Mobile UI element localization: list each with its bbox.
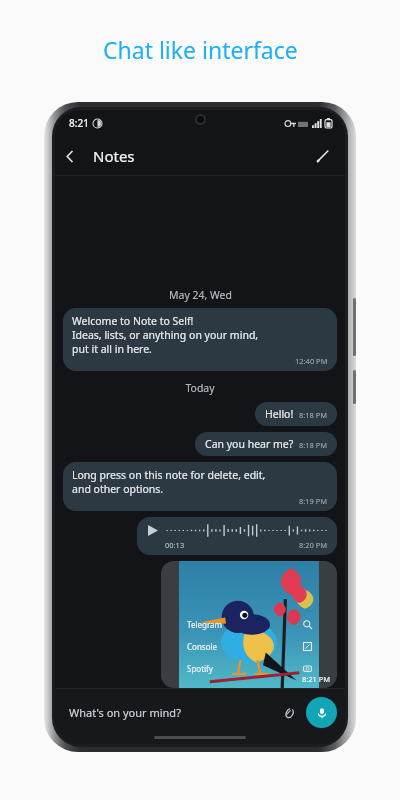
staticText: 8:18 PM (299, 410, 328, 420)
staticText: Welcome to Note to Self! (72, 314, 194, 328)
staticText: Long press on this note for delete, edit… (72, 468, 266, 482)
button[interactable]: What's on your mind? (69, 705, 181, 720)
button[interactable]: Hello! (255, 402, 337, 426)
staticText: and other options. (72, 482, 164, 496)
staticText: Telegram (187, 619, 223, 630)
button[interactable]: Welcome to Note to Self! (63, 308, 337, 371)
other: Play (147, 525, 158, 536)
staticText: 8:21 (69, 116, 89, 130)
staticText: Chat like interface (103, 34, 298, 65)
button[interactable]: Record voice note (306, 697, 337, 728)
staticText: Hello! (265, 407, 294, 421)
staticText: Spotify (187, 663, 213, 674)
staticText: 8:19 PM (299, 496, 328, 506)
button[interactable]: Can you hear me? (195, 432, 337, 456)
staticText: put it all in here. (72, 342, 152, 356)
button[interactable]: Long press on this note for delete, edit… (63, 462, 337, 511)
staticText: Today (185, 381, 215, 395)
button[interactable]: Image attachment (161, 561, 337, 688)
staticText: 8:20 PM (299, 540, 328, 550)
staticText: 12:40 PM (295, 356, 328, 366)
button[interactable]: Back (55, 141, 85, 171)
staticText: Can you hear me? (205, 437, 294, 451)
staticText: 00:13 (165, 540, 185, 550)
staticText: 8:18 PM (299, 440, 328, 450)
button[interactable]: Edit (307, 140, 339, 172)
staticText: Ideas, lists, or anything on your mind, (72, 328, 259, 342)
staticText: May 24, Wed (169, 288, 232, 302)
staticText: 8:21 PM (302, 674, 331, 684)
button[interactable]: Play (137, 517, 337, 555)
staticText: Notes (93, 146, 135, 166)
button[interactable]: Attach (275, 700, 301, 726)
staticText: Console (187, 641, 218, 652)
